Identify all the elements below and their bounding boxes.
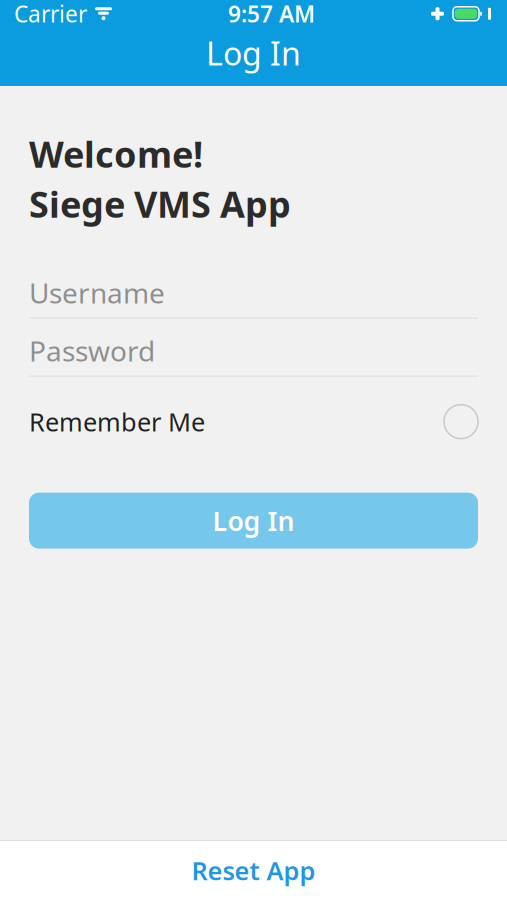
staticText: Username xyxy=(29,274,165,311)
staticText: Siege VMS App xyxy=(29,180,291,228)
staticText: Welcome! xyxy=(29,130,203,178)
button[interactable]: Log In xyxy=(29,493,478,549)
staticText: Remember Me xyxy=(29,405,205,438)
button[interactable]: Reset App xyxy=(0,841,507,900)
staticText: Password xyxy=(29,332,155,369)
staticText: Log In xyxy=(206,32,301,74)
staticText: Carrier xyxy=(14,0,87,29)
staticText: 9:57 AM xyxy=(228,0,315,29)
button[interactable]: Remember Me xyxy=(29,399,478,445)
staticText: Reset App xyxy=(191,854,315,887)
staticText: Log In xyxy=(212,503,294,538)
